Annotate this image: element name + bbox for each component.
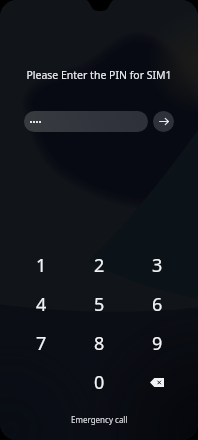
- staticText: 5: [94, 292, 105, 317]
- staticText: 4: [36, 292, 47, 317]
- button[interactable]: 1: [12, 246, 70, 285]
- staticText: 3: [152, 253, 163, 278]
- button[interactable]: 7: [12, 324, 70, 363]
- staticText: 2: [94, 253, 105, 278]
- button[interactable]: 0: [70, 363, 128, 402]
- staticText: 0: [94, 370, 105, 395]
- staticText: 1: [36, 253, 47, 278]
- button[interactable]: 2: [70, 246, 128, 285]
- staticText: 9: [152, 331, 163, 356]
- button[interactable]: Submit PIN: [153, 111, 174, 132]
- button[interactable]: 5: [70, 285, 128, 324]
- button[interactable]: 6: [128, 285, 186, 324]
- button[interactable]: Emergency call: [63, 411, 136, 428]
- button[interactable]: 9: [128, 324, 186, 363]
- staticText: 8: [94, 331, 105, 356]
- button[interactable]: 8: [70, 324, 128, 363]
- button[interactable]: [24, 111, 148, 132]
- button[interactable]: 4: [12, 285, 70, 324]
- button[interactable]: Backspace: [128, 363, 186, 402]
- staticText: 6: [152, 292, 163, 317]
- staticText: Please Enter the PIN for SIM1: [26, 68, 172, 82]
- staticText: 7: [36, 331, 47, 356]
- button[interactable]: 3: [128, 246, 186, 285]
